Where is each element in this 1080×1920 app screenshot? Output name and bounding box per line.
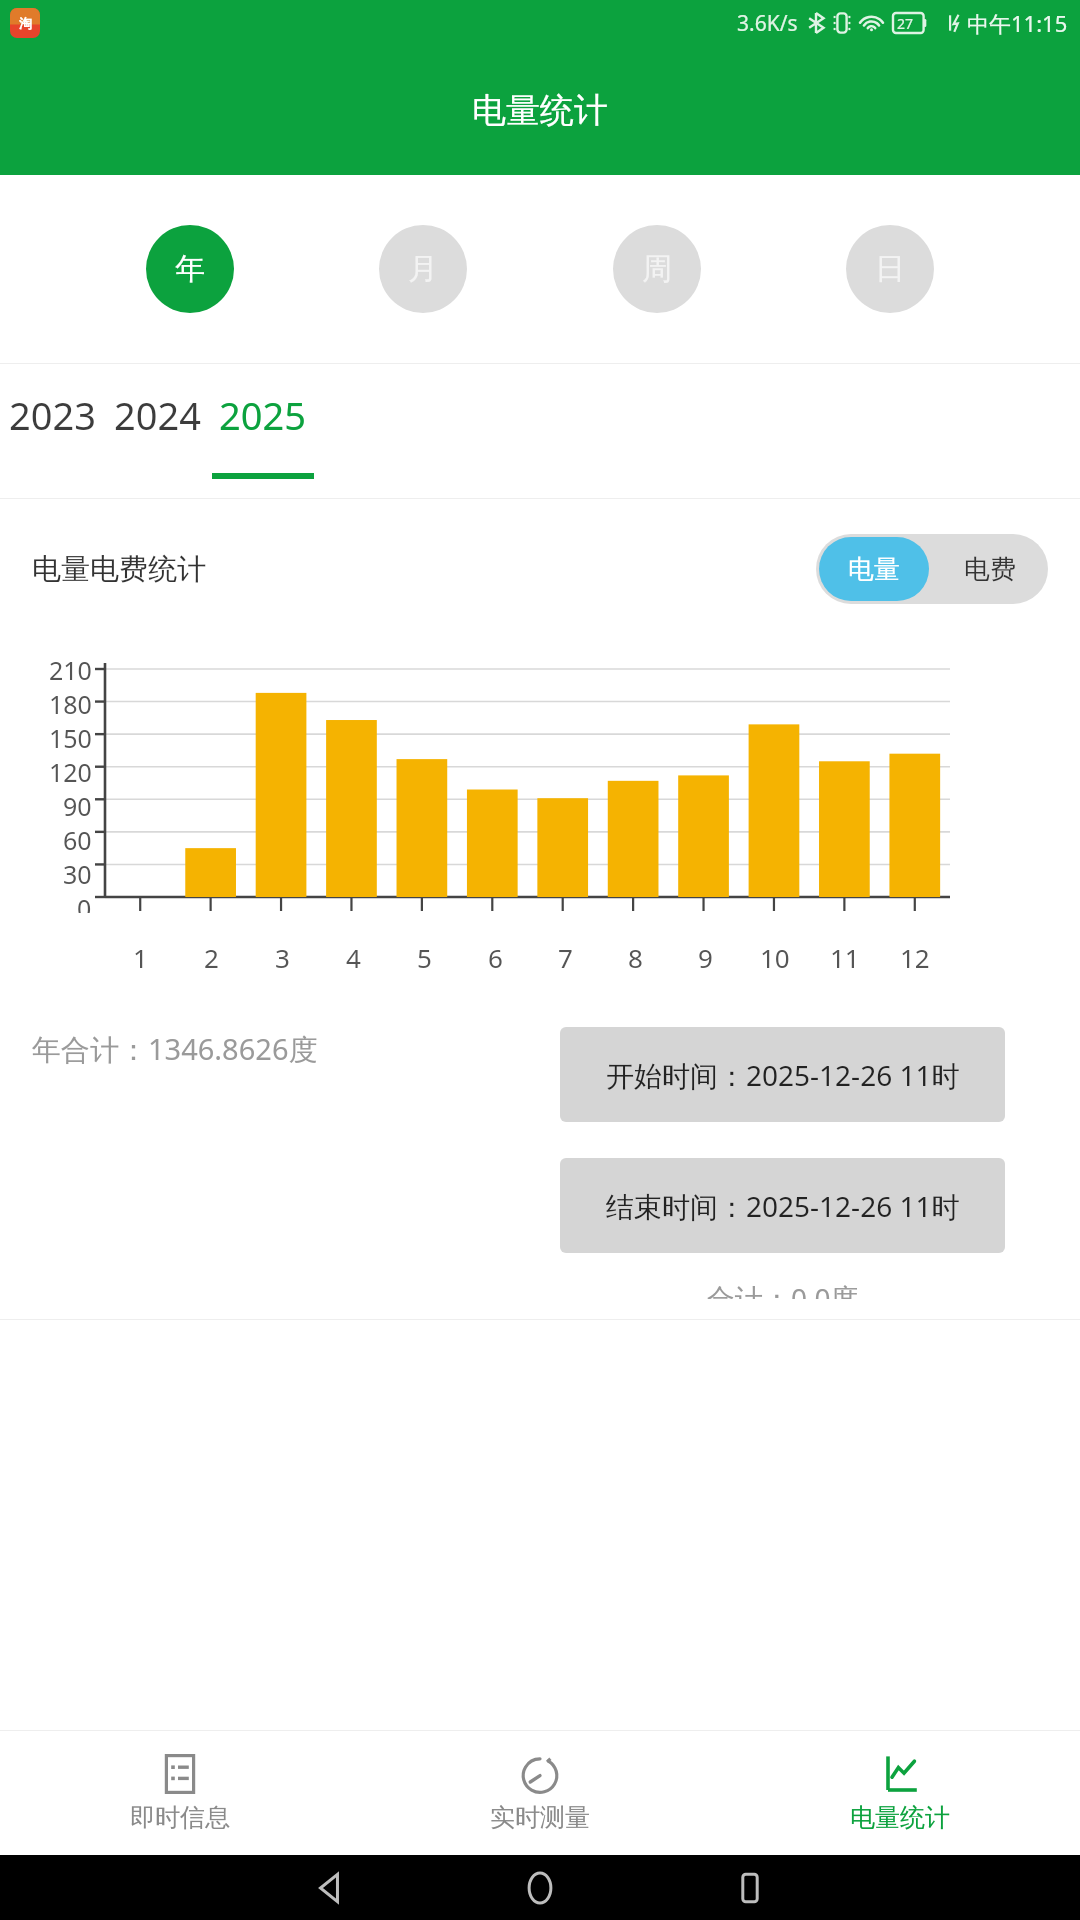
staticText: 30 [63,857,92,891]
other: Back [313,1871,347,1905]
staticText: 8 [628,940,643,975]
staticText: 9 [698,940,713,975]
button[interactable]: 日 [846,225,934,313]
staticText: 中午11:15 [967,8,1068,38]
button[interactable]: 2024 [105,383,210,447]
button[interactable]: 年 [146,225,234,313]
staticText: 120 [49,755,92,789]
staticText: 合计：0.0度 [707,1279,859,1299]
staticText: 7 [558,940,573,975]
staticText: 150 [49,721,92,755]
staticText: 周 [642,250,672,288]
staticText: 2025 [219,389,306,441]
staticText: 实时测量 [490,1802,590,1833]
button[interactable]: 实时测量 [360,1731,720,1855]
staticText: 日 [875,250,905,288]
staticText: 0 [77,891,92,913]
staticText: 淘 [19,15,32,31]
staticText: 月 [408,250,438,288]
staticText: 年 [175,250,205,288]
button[interactable]: 2023 [0,383,105,447]
button[interactable]: 开始时间：2025-12-26 11时 [560,1027,1005,1122]
staticText: 4 [346,940,361,975]
other: Home [523,1871,557,1905]
staticText: 2023 [9,389,96,441]
staticText: 11 [830,940,860,975]
staticText: 即时信息 [130,1802,230,1833]
staticText: 2 [204,940,219,975]
staticText: 电量统计 [850,1802,950,1833]
staticText: 电量 [848,553,900,586]
staticText: 12 [900,940,930,975]
staticText: 开始时间：2025-12-26 11时 [606,1056,960,1094]
other: 实时测量 [520,1754,560,1794]
button[interactable]: 电费 [932,534,1048,604]
staticText: 90 [63,789,92,823]
staticText: 结束时间：2025-12-26 11时 [606,1187,960,1225]
other: 电量统计 [880,1754,920,1794]
button[interactable]: 月 [379,225,467,313]
staticText: 1 [133,940,148,975]
staticText: 180 [49,687,92,721]
staticText: 2024 [114,389,201,441]
staticText: 电量电费统计 [32,551,206,588]
staticText: 60 [63,823,92,857]
button[interactable]: 即时信息 [0,1731,360,1855]
staticText: 3 [275,940,290,975]
staticText: 电费 [964,553,1016,586]
button[interactable]: 结束时间：2025-12-26 11时 [560,1158,1005,1253]
staticText: 年合计：1346.8626度 [32,1029,318,1069]
staticText: 210 [49,653,92,687]
staticText: 27 [897,14,914,33]
other: Recents [735,1873,765,1903]
button[interactable]: 电量 [819,537,929,601]
staticText: 电量统计 [472,89,608,132]
button[interactable]: 周 [613,225,701,313]
button[interactable]: 2025 [210,383,315,447]
button[interactable]: 电量统计 [720,1731,1080,1855]
staticText: 6 [488,940,503,975]
staticText: 3.6K/s [737,9,798,38]
other: 即时信息 [160,1754,200,1794]
staticText: 10 [760,940,790,975]
staticText: 5 [417,940,432,975]
